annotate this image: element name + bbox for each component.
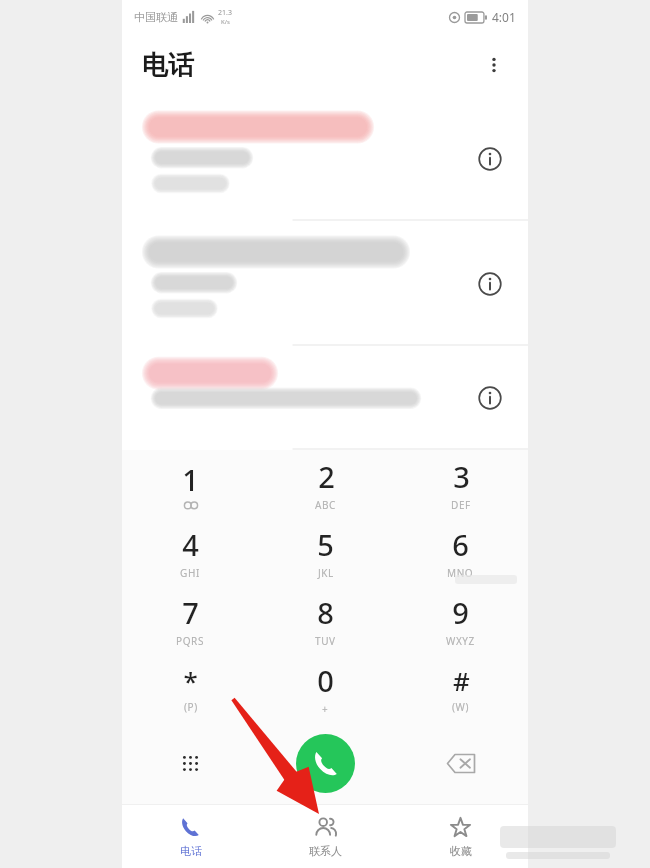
staticText: 6 [452, 525, 469, 564]
button[interactable]: # [393, 654, 528, 722]
button[interactable]: Call [296, 734, 355, 793]
button[interactable]: 0 [258, 654, 393, 722]
button[interactable]: Call details [470, 139, 510, 179]
staticText: (P) [184, 700, 198, 714]
button[interactable]: Call details [470, 378, 510, 418]
button[interactable]: Call details [122, 346, 528, 450]
button[interactable]: 2 [258, 450, 393, 518]
staticText: 7 [182, 593, 199, 632]
staticText: 4 [182, 525, 199, 564]
staticText: 2 [318, 457, 335, 496]
button[interactable]: Delete [393, 722, 528, 804]
staticText: 收藏 [450, 844, 472, 858]
button[interactable]: 收藏 [393, 805, 528, 868]
button[interactable]: 1 [122, 450, 258, 518]
staticText: 3 [453, 457, 470, 496]
staticText: 8 [317, 593, 334, 632]
staticText: DEF [451, 498, 471, 512]
staticText: 联系人 [309, 844, 342, 858]
staticText: MNO [447, 566, 474, 580]
staticText: PQRS [176, 634, 204, 648]
staticText: 21.3 [218, 8, 232, 18]
staticText: 4:01 [492, 9, 516, 25]
staticText: 5 [317, 525, 334, 564]
staticText: WXYZ [446, 634, 475, 648]
staticText: + [322, 702, 329, 716]
staticText: K/s [221, 18, 230, 26]
button[interactable]: 8 [258, 586, 393, 654]
button[interactable]: 电话 [122, 805, 258, 868]
staticText: 1 [182, 460, 199, 499]
staticText: 电话 [180, 844, 202, 858]
button[interactable]: 6 [393, 518, 528, 586]
button[interactable]: More options [472, 43, 516, 87]
button[interactable]: Call details [122, 221, 528, 346]
staticText: 中国联通 [134, 10, 178, 24]
button[interactable]: * [122, 654, 258, 722]
staticText: 0 [317, 661, 334, 700]
button[interactable]: 3 [393, 450, 528, 518]
button[interactable]: 4 [122, 518, 258, 586]
button[interactable]: 联系人 [258, 805, 393, 868]
button[interactable]: 7 [122, 586, 258, 654]
staticText: * [183, 663, 198, 698]
staticText: TUV [315, 634, 336, 648]
staticText: 9 [452, 593, 469, 632]
button[interactable]: Call details [122, 96, 528, 221]
staticText: # [453, 663, 470, 698]
button[interactable]: Call details [470, 264, 510, 304]
staticText: (W) [452, 700, 470, 714]
button[interactable]: 9 [393, 586, 528, 654]
button[interactable]: 5 [258, 518, 393, 586]
staticText: ABC [315, 498, 337, 512]
staticText: GHI [180, 566, 200, 580]
staticText: 电话 [142, 49, 194, 82]
staticText: JKL [318, 566, 334, 580]
button[interactable]: Hide keypad [122, 722, 258, 804]
